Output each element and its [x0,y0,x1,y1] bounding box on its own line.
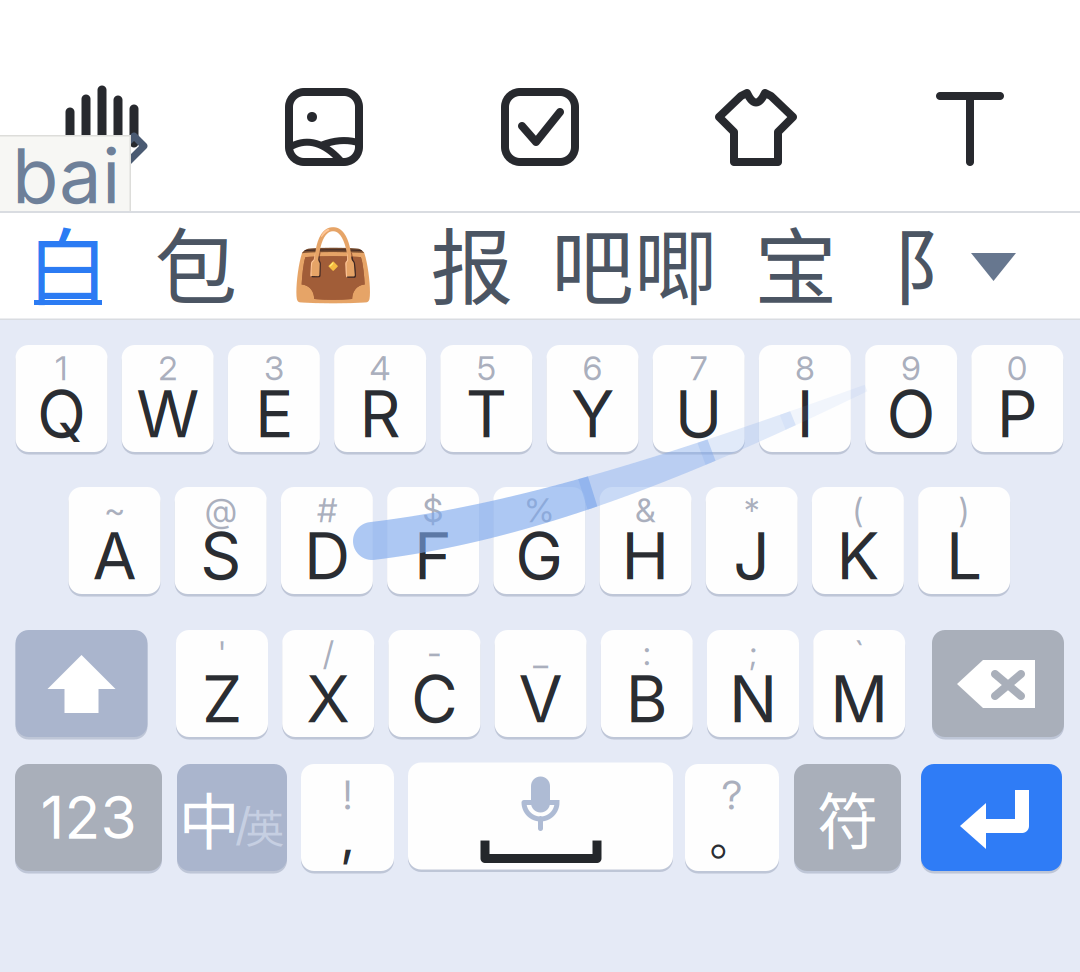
staticText: 包 [154,202,237,322]
button[interactable]: ( [812,487,904,594]
button[interactable]: Shift [15,630,147,737]
staticText: Y [571,375,614,453]
staticText: / [323,633,334,673]
button[interactable]: * [706,487,798,594]
button[interactable]: 5 [440,345,532,452]
staticText: ? [721,771,742,819]
button[interactable]: ! [301,764,394,871]
button[interactable]: 6 [546,345,638,452]
staticText: , [340,804,355,868]
button[interactable]: ' [176,630,268,737]
button[interactable]: 0 [971,345,1063,452]
staticText: 吧唧 [551,202,717,322]
button[interactable]: ) [918,487,1010,594]
button[interactable]: $ [387,487,479,594]
button[interactable]: _ [495,630,587,737]
staticText: 9 [901,348,921,388]
button[interactable]: Select all [490,72,590,182]
button[interactable]: 8 [759,345,851,452]
staticText: 报 [430,202,513,322]
staticText: P [997,375,1038,453]
staticText: K [836,517,879,595]
button[interactable]: 👜 [278,219,388,311]
button[interactable]: Handwriting [58,72,158,182]
staticText: * [744,490,760,530]
staticText: 。 [709,803,754,869]
staticText: 1 [55,348,68,388]
staticText: J [733,517,770,595]
button[interactable]: : [601,630,693,737]
button[interactable]: 2 [122,345,214,452]
button[interactable]: Space [408,764,673,871]
staticText: : [643,633,651,673]
button[interactable]: 123 [15,764,162,871]
staticText: $ [423,490,444,530]
button[interactable]: ` [813,630,905,737]
button[interactable]: 7 [653,345,745,452]
button[interactable]: More candidates [961,243,1026,293]
staticText: Q [37,375,86,453]
button[interactable]: @ [175,487,267,594]
staticText: 3 [264,348,284,388]
button[interactable]: Delete [932,630,1064,737]
button[interactable]: # [281,487,373,594]
staticText: ` [855,633,864,673]
staticText: 宝 [754,202,837,322]
button[interactable]: 包 [106,216,286,308]
staticText: X [306,660,350,738]
button[interactable]: 宝 [706,216,886,308]
button[interactable]: 吧唧 [544,216,724,308]
staticText: S [200,517,241,595]
staticText: I [796,375,813,453]
button[interactable]: 1 [15,345,107,452]
staticText: ( [852,490,863,530]
button[interactable]: ; [707,630,799,737]
staticText: ! [343,771,352,819]
staticText: O [887,375,936,453]
staticText: 符 [817,773,878,862]
button[interactable]: 白 [13,216,123,308]
staticText: B [626,660,668,738]
button[interactable]: Photos [274,72,374,182]
staticText: L [946,517,982,595]
button[interactable]: 阝 [892,216,932,308]
staticText: G [515,517,563,595]
staticText: R [360,375,401,453]
button[interactable]: ? [685,764,779,871]
button[interactable]: & [599,487,691,594]
button[interactable]: Themes [705,72,807,182]
staticText: 5 [477,348,496,388]
button[interactable]: 报 [382,216,562,308]
staticText: 7 [690,348,708,388]
staticText: W [136,375,199,453]
staticText: ' [217,633,226,673]
staticText: U [675,375,723,453]
button[interactable]: / [282,630,374,737]
button[interactable]: Text style [920,72,1020,182]
button[interactable]: ~ [68,487,160,594]
button[interactable]: 符 [794,764,901,871]
staticText: V [519,660,563,738]
staticText: ~ [104,490,125,530]
staticText: 2 [158,348,177,388]
staticText: 👜 [290,224,376,306]
button[interactable]: Return [921,764,1062,871]
button[interactable]: 3 [228,345,320,452]
staticText: 中 [178,774,239,862]
button[interactable]: - [388,630,480,737]
staticText: E [255,375,293,453]
staticText: F [414,517,452,595]
staticText: & [635,490,656,530]
staticText: N [729,660,777,738]
button[interactable]: % [493,487,585,594]
staticText: D [304,517,350,595]
button[interactable]: 4 [334,345,426,452]
staticText: bai [12,129,120,221]
staticText: 8 [795,348,815,388]
button[interactable]: 中 [177,764,287,871]
button[interactable]: 9 [865,345,957,452]
staticText: H [621,517,669,595]
staticText: _ [533,633,548,673]
staticText: 6 [582,348,602,388]
staticText: A [92,517,136,595]
